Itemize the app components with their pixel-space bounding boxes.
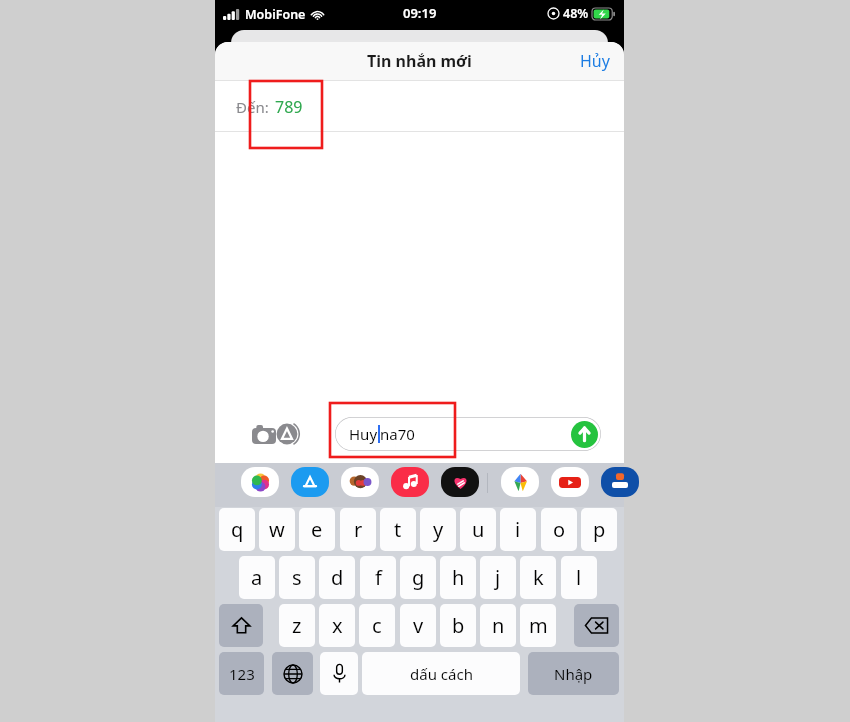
button[interactable]: c <box>359 604 395 647</box>
button[interactable]: App Store <box>273 419 303 449</box>
button[interactable]: 123 <box>219 652 264 695</box>
staticText: y <box>433 516 444 543</box>
staticText: a <box>251 564 263 591</box>
staticText: 09:19 <box>403 4 437 22</box>
staticText: h <box>452 564 465 591</box>
staticText: na70 <box>380 424 415 444</box>
staticText: b <box>452 612 465 639</box>
button[interactable]: z <box>279 604 315 647</box>
button[interactable]: w <box>259 508 295 551</box>
button[interactable]: Send <box>570 420 599 449</box>
button[interactable]: y <box>420 508 456 551</box>
button[interactable]: u <box>460 508 496 551</box>
button[interactable]: g <box>400 556 436 599</box>
button[interactable]: Change keyboard <box>272 652 313 695</box>
staticText: w <box>269 516 285 543</box>
button[interactable]: App 5 <box>441 467 479 497</box>
button[interactable]: n <box>480 604 516 647</box>
staticText: Nhập <box>554 664 593 684</box>
staticText: t <box>394 516 402 543</box>
button[interactable]: Nhập <box>528 652 619 695</box>
staticText: Tin nhắn mới <box>367 50 472 72</box>
button[interactable]: Huy <box>335 417 601 451</box>
button[interactable]: t <box>380 508 416 551</box>
staticText: r <box>354 516 363 543</box>
button[interactable]: i <box>500 508 536 551</box>
staticText: j <box>495 564 501 591</box>
button[interactable]: v <box>400 604 436 647</box>
staticText: p <box>593 516 606 543</box>
staticText: q <box>231 516 244 543</box>
staticText: c <box>372 612 382 639</box>
staticText: e <box>311 516 323 543</box>
button[interactable]: Dictation <box>320 652 358 695</box>
staticText: Huy <box>349 424 378 444</box>
staticText: u <box>472 516 485 543</box>
staticText: k <box>533 564 544 591</box>
button[interactable]: o <box>541 508 577 551</box>
button[interactable]: Camera <box>249 419 279 449</box>
staticText: Hủy <box>580 50 610 72</box>
staticText: z <box>292 612 302 639</box>
button[interactable]: Shift <box>219 604 263 647</box>
staticText: s <box>292 564 302 591</box>
button[interactable]: Backspace <box>574 604 619 647</box>
button[interactable]: App 1 <box>241 467 279 497</box>
button[interactable]: x <box>319 604 355 647</box>
staticText: v <box>413 612 424 639</box>
button[interactable]: App 4 <box>391 467 429 497</box>
button[interactable]: h <box>440 556 476 599</box>
button[interactable]: dấu cách <box>362 652 520 695</box>
button[interactable]: a <box>239 556 275 599</box>
staticText: d <box>331 564 344 591</box>
staticText: l <box>576 564 582 591</box>
button[interactable]: Đến: <box>215 81 624 132</box>
button[interactable]: e <box>299 508 335 551</box>
staticText: m <box>529 612 548 639</box>
button[interactable]: s <box>279 556 315 599</box>
button[interactable]: j <box>480 556 516 599</box>
button[interactable]: d <box>319 556 355 599</box>
staticText: dấu cách <box>410 664 473 684</box>
button[interactable]: Hủy <box>566 44 624 78</box>
button[interactable]: b <box>440 604 476 647</box>
button[interactable]: f <box>360 556 396 599</box>
staticText: i <box>515 516 521 543</box>
button[interactable]: k <box>520 556 556 599</box>
button[interactable]: App 6 <box>501 467 539 497</box>
staticText: o <box>553 516 566 543</box>
button[interactable]: App 8 <box>601 467 639 497</box>
button[interactable]: m <box>520 604 556 647</box>
button[interactable]: App 2 <box>291 467 329 497</box>
button[interactable]: l <box>561 556 597 599</box>
staticText: f <box>375 564 382 591</box>
staticText: x <box>332 612 343 639</box>
staticText: g <box>412 564 425 591</box>
staticText: MobiFone <box>245 6 306 23</box>
staticText: Đến: <box>236 97 269 117</box>
button[interactable]: App 7 <box>551 467 589 497</box>
staticText: 789 <box>275 96 303 118</box>
staticText: 48% <box>563 5 589 22</box>
button[interactable]: p <box>581 508 617 551</box>
button[interactable]: q <box>219 508 255 551</box>
staticText: n <box>492 612 505 639</box>
button[interactable]: App 3 <box>341 467 379 497</box>
button[interactable]: r <box>340 508 376 551</box>
staticText: 123 <box>229 664 255 684</box>
